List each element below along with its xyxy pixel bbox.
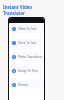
staticText: Video To Text [18,27,37,31]
button[interactable]: Image To Text [11,66,42,75]
button[interactable]: Video To Text [11,24,42,33]
button[interactable]: History [11,80,42,89]
staticText: History [18,83,29,87]
staticText: Instant Video [3,4,32,10]
button[interactable]: Photo Translation [11,52,42,61]
staticText: Translator [3,10,25,16]
staticText: Voice To Text [18,41,37,45]
button[interactable]: Voice To Text [11,38,42,47]
staticText: Photo Translation [18,55,42,59]
staticText: Image To Text [18,69,38,73]
